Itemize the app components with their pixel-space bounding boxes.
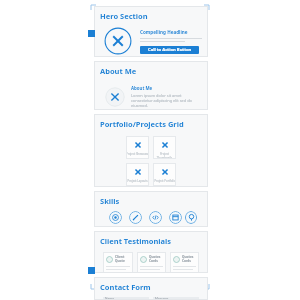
staticText: About Me — [100, 66, 137, 76]
button[interactable]: Skills — [94, 191, 208, 227]
staticText: Portfolio/Projects Grid — [100, 119, 184, 129]
staticText: Hero Section — [100, 11, 148, 21]
staticText: Name — [105, 297, 114, 300]
button[interactable]: Client Quote — [103, 252, 133, 273]
button[interactable]: Project Layouts — [126, 163, 149, 186]
button[interactable]: Client Testimonials — [94, 231, 208, 273]
button[interactable]: Smart Above — [185, 211, 197, 227]
button[interactable]: Sketch — [125, 211, 145, 227]
staticText: Client Testimonials — [100, 236, 172, 246]
staticText: Project Portfolio — [154, 179, 176, 183]
button[interactable]: Hero Section — [94, 6, 208, 57]
staticText: Message — [155, 297, 169, 300]
button[interactable]: Name — [103, 297, 149, 300]
button[interactable]: Element — [165, 211, 185, 227]
button[interactable]: Element — [145, 211, 165, 227]
staticText: Client Quote — [115, 255, 130, 263]
button[interactable]: Project Thumbnails — [153, 136, 176, 159]
button[interactable]: Contact Form — [94, 277, 208, 300]
button[interactable]: Quotes Cards — [170, 252, 199, 273]
button[interactable]: Message — [153, 297, 199, 300]
button[interactable]: Quotes Cards — [137, 252, 166, 273]
button[interactable]: Visual Code — [105, 211, 125, 227]
staticText: Call to Action Button — [148, 47, 192, 53]
staticText: Compelling Headline — [140, 29, 188, 35]
staticText: Project Showcase — [126, 152, 149, 156]
staticText: About Me — [131, 85, 153, 91]
button[interactable]: Project Portfolio — [153, 163, 176, 186]
staticText: Quotes Cards — [149, 255, 163, 263]
staticText: Skills — [100, 196, 120, 206]
button[interactable]: Portfolio/Projects Grid — [94, 114, 208, 187]
staticText: Contact Form — [100, 282, 151, 292]
button[interactable]: About Me — [94, 61, 208, 110]
staticText: Lorem ipsum dolor sit amet consectetur a… — [131, 93, 202, 108]
staticText: Project Thumbnails — [153, 152, 176, 159]
button[interactable]: Project Showcase — [126, 136, 149, 159]
button[interactable]: Call to Action Button — [140, 46, 199, 54]
staticText: Project Layouts — [127, 179, 148, 183]
staticText: Quotes Cards — [182, 255, 196, 263]
